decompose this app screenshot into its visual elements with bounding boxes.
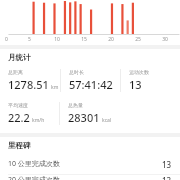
staticText: 30 [162, 36, 168, 43]
button[interactable]: 总时长 [61, 66, 120, 95]
staticText: 里程碑 [8, 141, 31, 150]
staticText: 20 [108, 36, 114, 43]
staticText: 5 [28, 36, 31, 43]
staticText: 总时长 [69, 69, 84, 75]
staticText: kcal [102, 117, 112, 124]
button[interactable]: 20 公里完成次数 [0, 175, 180, 180]
staticText: 13 [129, 77, 142, 92]
staticText: 13 [162, 159, 172, 170]
button[interactable]: 总距离 [0, 66, 60, 95]
staticText: 0 [5, 36, 8, 43]
button[interactable]: 总热量 [60, 99, 120, 128]
staticText: km/h [32, 117, 45, 124]
staticText: 1278.51 [8, 77, 49, 92]
staticText: 15 [81, 36, 87, 43]
button[interactable]: 平均速度 [0, 99, 59, 128]
staticText: km [51, 84, 59, 91]
button[interactable]: 运动次数 [121, 66, 180, 95]
staticText: 13 [162, 175, 172, 180]
staticText: 总热量 [68, 102, 83, 108]
staticText: 20 公里完成次数 [8, 175, 162, 180]
staticText: 25 [135, 36, 141, 43]
button[interactable]: 10 公里完成次数 [0, 154, 180, 174]
staticText: 总距离 [8, 69, 23, 75]
staticText: 10 公里完成次数 [8, 159, 162, 169]
staticText: 平均速度 [8, 102, 28, 108]
staticText: 运动次数 [129, 69, 149, 75]
staticText: 月统计 [8, 53, 31, 62]
staticText: 22.2 [8, 110, 30, 125]
staticText: 10 [54, 36, 60, 43]
staticText: 28301 [68, 110, 100, 125]
staticText: 57:41:42 [69, 77, 113, 92]
